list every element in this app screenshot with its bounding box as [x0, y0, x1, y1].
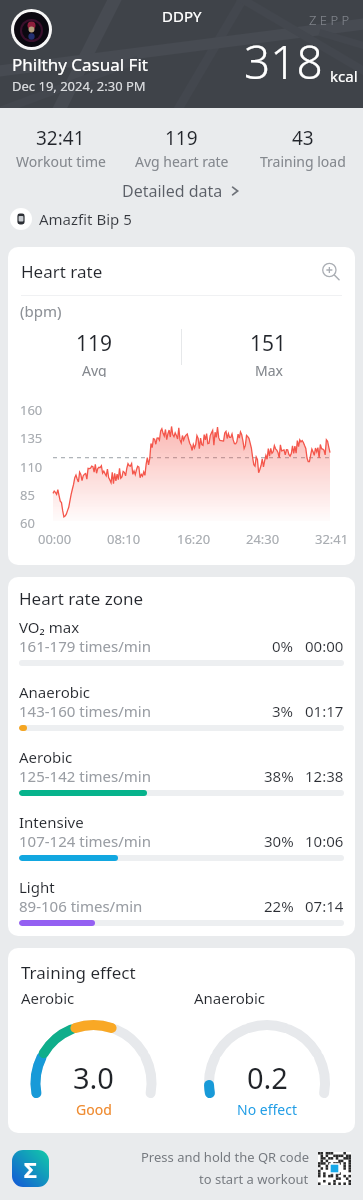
staticText: Good — [76, 1100, 112, 1119]
staticText: Training load — [260, 152, 346, 171]
staticText: 135 — [20, 429, 43, 447]
staticText: Z E P P — [309, 11, 350, 29]
staticText: 119 — [76, 329, 113, 358]
staticText: 151 — [250, 329, 287, 358]
staticText: 16:20 — [177, 530, 211, 548]
button[interactable]: Amazfit Bip 5 — [10, 208, 363, 230]
staticText: 0% — [272, 636, 294, 656]
staticText: Intensive — [19, 812, 84, 832]
staticText: (bpm) — [20, 301, 62, 321]
staticText: Press and hold the QR code — [141, 1148, 309, 1166]
staticText: No effect — [237, 1100, 297, 1119]
staticText: 08:10 — [107, 530, 141, 548]
staticText: 38% — [264, 766, 294, 786]
staticText: 3% — [272, 701, 294, 721]
staticText: 00:00 — [38, 530, 72, 548]
staticText: 60 — [20, 514, 35, 532]
staticText: Heart rate zone — [19, 587, 144, 610]
staticText: 119 — [165, 125, 198, 151]
staticText: Amazfit Bip 5 — [39, 209, 132, 229]
staticText: 24:30 — [246, 530, 280, 548]
staticText: 85 — [20, 486, 35, 504]
staticText: 30% — [264, 831, 294, 851]
staticText: Avg heart rate — [135, 152, 229, 171]
staticText: VO₂ max — [19, 617, 80, 637]
staticText: Avg — [82, 361, 107, 377]
staticText: Anaerobic — [194, 988, 265, 1008]
staticText: 89-106 times/min — [19, 896, 264, 916]
staticText: 107-124 times/min — [19, 831, 264, 851]
staticText: 110 — [20, 458, 43, 476]
staticText: 07:14 — [305, 896, 344, 916]
staticText: 00:00 — [305, 636, 344, 656]
staticText: 125-142 times/min — [19, 766, 264, 786]
button[interactable]: Zoom in — [318, 259, 342, 283]
button[interactable]: Zepp app — [12, 1150, 49, 1187]
staticText: Detailed data — [122, 180, 223, 202]
staticText: 01:17 — [305, 701, 344, 721]
staticText: 12:38 — [305, 766, 344, 786]
staticText: Dec 19, 2024, 2:30 PM — [12, 77, 146, 95]
staticText: 43 — [292, 125, 314, 151]
staticText: Philthy Casual Fit — [12, 53, 148, 76]
staticText: 161-179 times/min — [19, 636, 272, 656]
staticText: Workout time — [16, 152, 106, 171]
staticText: 318 — [244, 30, 323, 93]
staticText: 0.2 — [247, 1058, 288, 1097]
staticText: Anaerobic — [19, 682, 90, 702]
staticText: 10:06 — [305, 831, 344, 851]
staticText: 22% — [264, 896, 294, 916]
staticText: Light — [19, 877, 55, 897]
staticText: 32:41 — [36, 125, 85, 151]
staticText: Aerobic — [21, 988, 75, 1008]
staticText: DDPY — [162, 6, 202, 26]
staticText: Heart rate — [21, 260, 318, 283]
staticText: Aerobic — [19, 747, 73, 767]
staticText: Max — [255, 361, 283, 377]
staticText: Σ — [24, 1154, 37, 1184]
staticText: 32:41 — [315, 530, 349, 548]
staticText: to start a workout — [199, 1170, 309, 1188]
button[interactable]: Detailed data — [0, 180, 363, 202]
staticText: Training effect — [21, 961, 136, 984]
staticText: 143-160 times/min — [19, 701, 272, 721]
staticText: 160 — [20, 401, 43, 419]
staticText: kcal — [330, 66, 358, 86]
staticText: 3.0 — [73, 1058, 114, 1097]
